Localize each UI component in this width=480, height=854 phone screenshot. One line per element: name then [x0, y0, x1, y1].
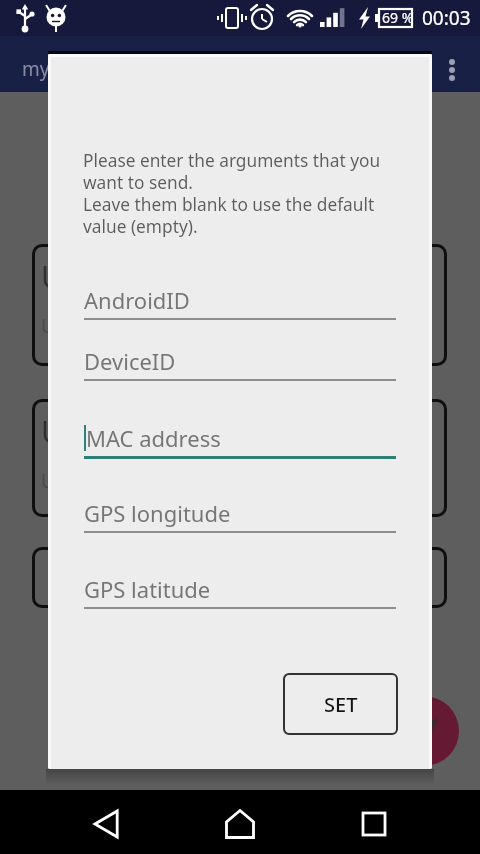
staticText: U: [41, 411, 63, 452]
button[interactable]: Send: [389, 696, 459, 766]
staticText: SET: [324, 691, 358, 718]
button[interactable]: Home: [212, 796, 268, 852]
staticText: U: [41, 256, 63, 297]
staticText: MAC address: [86, 423, 221, 453]
button[interactable]: Recent apps: [346, 796, 402, 852]
staticText: GPS latitude: [84, 574, 211, 604]
button[interactable]: U: [32, 399, 447, 517]
staticText: Please enter the arguments that you want…: [83, 149, 381, 238]
staticText: myPhoneInfo: [22, 56, 143, 82]
button[interactable]: Back: [79, 796, 135, 852]
staticText: AndroidID: [84, 285, 190, 315]
button[interactable]: [32, 547, 447, 608]
button[interactable]: SET: [283, 673, 398, 735]
staticText: 69 %: [382, 8, 414, 27]
staticText: GPS longitude: [84, 498, 231, 528]
staticText: DeviceID: [84, 346, 176, 376]
staticText: 00:03: [422, 5, 471, 31]
button[interactable]: More options: [432, 50, 472, 90]
staticText: U: [41, 313, 55, 339]
staticText: U: [41, 468, 55, 494]
button[interactable]: U: [32, 244, 447, 366]
